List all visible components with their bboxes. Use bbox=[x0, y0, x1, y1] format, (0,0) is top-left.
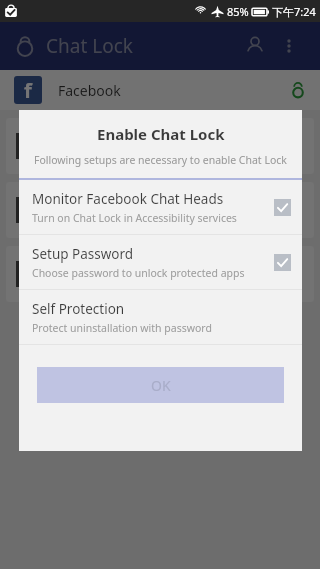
button[interactable] bbox=[6, 246, 314, 302]
staticText: Monitor Facebook Chat Heads bbox=[32, 190, 224, 208]
button[interactable]: f bbox=[0, 70, 320, 110]
staticText: Protect uninstallation with password bbox=[32, 321, 212, 335]
staticText: 85% bbox=[227, 4, 249, 19]
button[interactable]: Account bbox=[238, 29, 272, 63]
staticText: Choose password to unlock protected apps bbox=[32, 266, 245, 280]
button[interactable]: Self Protection bbox=[19, 290, 302, 344]
staticText: Facebook bbox=[58, 81, 121, 100]
button[interactable]: Setup Password bbox=[19, 235, 302, 289]
staticText: Setup Password bbox=[32, 245, 134, 263]
staticText: 下午7:24 bbox=[272, 4, 316, 19]
staticText: f bbox=[24, 77, 32, 104]
button[interactable] bbox=[6, 118, 314, 174]
staticText: Turn on Chat Lock in Accessibility servi… bbox=[32, 211, 237, 225]
staticText: Chat Lock bbox=[46, 33, 133, 59]
staticText: OK bbox=[151, 376, 171, 395]
button[interactable]: More options bbox=[272, 29, 306, 63]
button[interactable] bbox=[6, 182, 314, 238]
staticText: Enable Chat Lock bbox=[97, 124, 225, 144]
staticText: Following setups are necessary to enable… bbox=[34, 153, 287, 167]
button[interactable]: Monitor Facebook Chat Heads bbox=[19, 180, 302, 234]
staticText: Self Protection bbox=[32, 300, 125, 318]
